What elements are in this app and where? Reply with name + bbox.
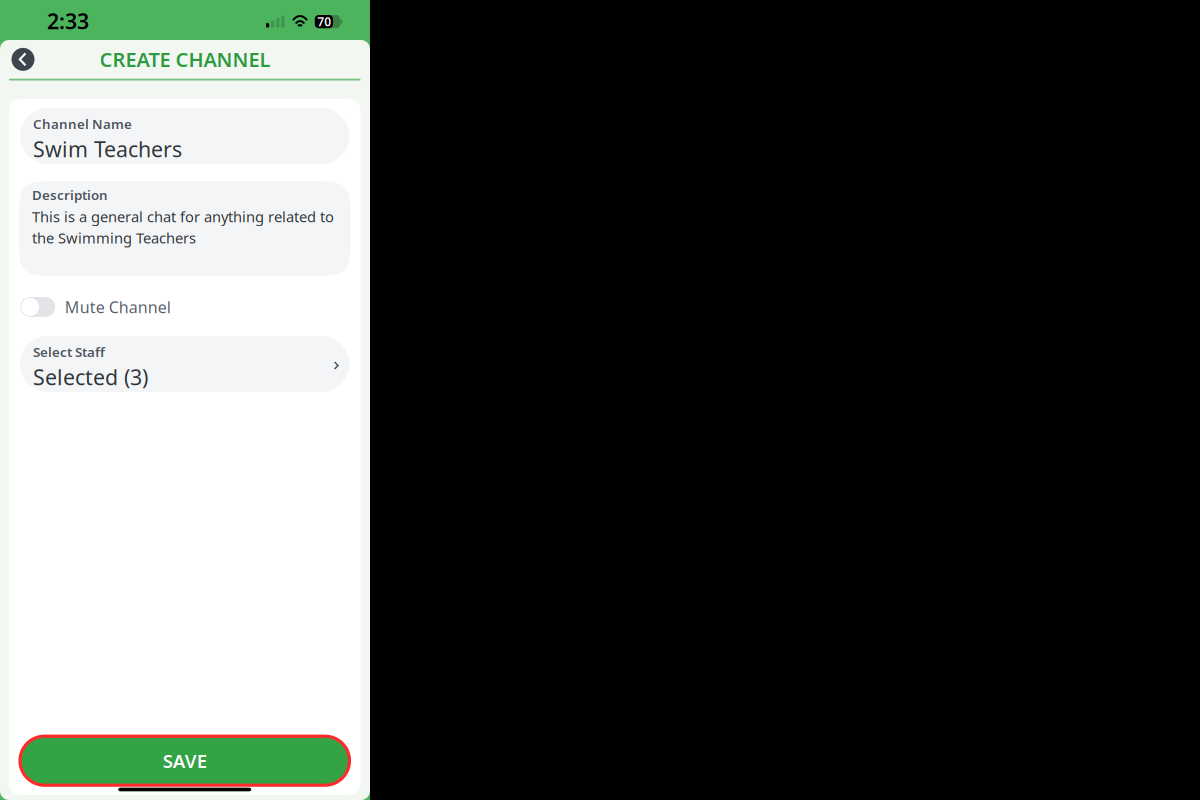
button[interactable]: Mute Channel	[9, 297, 360, 317]
staticText: SAVE	[163, 748, 207, 773]
staticText: This is a general chat for anything rela…	[32, 207, 334, 226]
staticText: Select Staff	[33, 343, 105, 361]
button[interactable]: Select Staff	[9, 336, 360, 392]
staticText: Selected (3)	[33, 363, 148, 391]
button[interactable]: SAVE	[20, 736, 349, 785]
staticText: Swim Teachers	[33, 135, 182, 163]
staticText: 70	[317, 14, 331, 29]
button[interactable]: Back	[0, 42, 34, 77]
button[interactable]: Description	[9, 181, 360, 276]
staticText: 2:33	[47, 7, 89, 35]
staticText: Mute Channel	[65, 296, 171, 318]
staticText: CREATE CHANNEL	[99, 46, 270, 73]
staticText: the Swimming Teachers	[32, 228, 196, 248]
staticText: Description	[32, 186, 108, 204]
staticText: Channel Name	[33, 115, 132, 133]
button[interactable]: Channel Name	[9, 108, 360, 164]
